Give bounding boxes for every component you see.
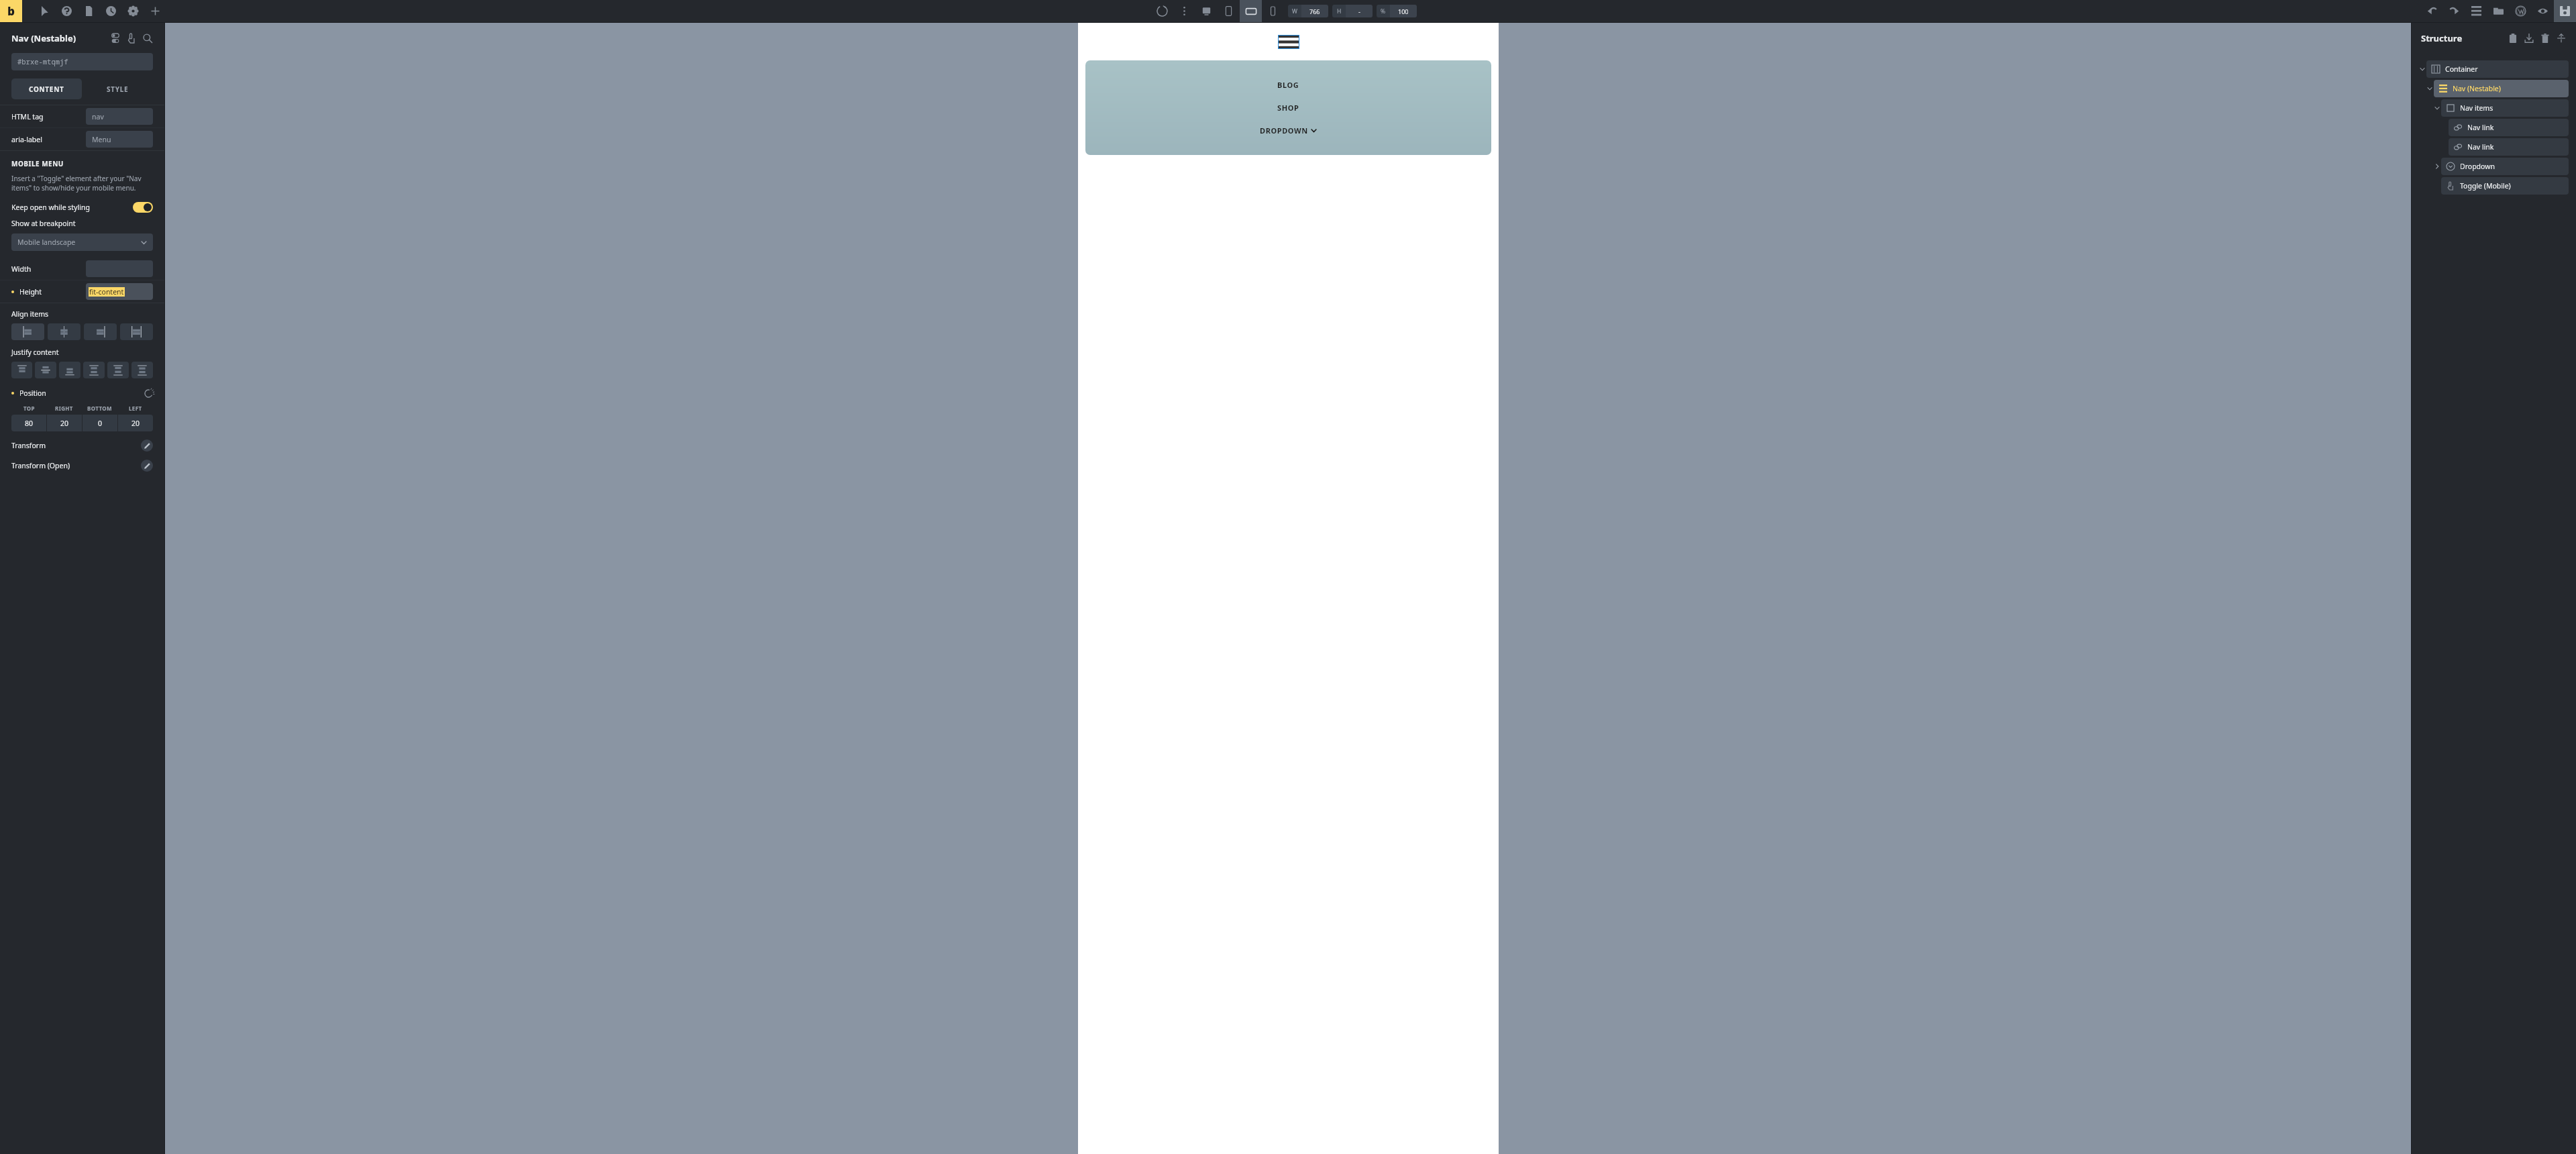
button[interactable]: Transform: [0, 435, 164, 456]
button[interactable]: Justify 5: [131, 362, 153, 378]
button[interactable]: Justify 0: [11, 362, 32, 378]
button[interactable]: Nav (Nestable): [2434, 80, 2569, 97]
button[interactable]: Align 3: [120, 323, 153, 340]
button[interactable]: Settings: [122, 0, 144, 22]
button[interactable]: 20: [118, 415, 153, 431]
button[interactable]: Toggle visibility: [109, 32, 121, 44]
button[interactable]: Align 0: [11, 323, 44, 340]
button[interactable]: Interactions: [125, 32, 137, 44]
staticText: 20: [60, 419, 69, 428]
button[interactable]: Height: [0, 280, 164, 303]
staticText: BOTTOM: [87, 405, 112, 412]
button[interactable]: Landscape: [1240, 0, 1262, 22]
button[interactable]: SHOP: [1277, 103, 1299, 113]
button[interactable]: STYLE: [82, 78, 153, 99]
button[interactable]: Templates: [2487, 0, 2510, 22]
staticText: Transform (Open): [11, 461, 70, 470]
staticText: SHOP: [1277, 103, 1299, 113]
staticText: Menu: [92, 135, 111, 144]
button[interactable]: Delete: [2539, 32, 2551, 44]
button[interactable]: WordPress: [2510, 0, 2532, 22]
button[interactable]: %: [1377, 5, 1417, 17]
button[interactable]: Help: [56, 0, 78, 22]
staticText: BLOG: [1277, 80, 1299, 90]
staticText: 766: [1309, 7, 1320, 15]
button[interactable]: Mobile: [1262, 0, 1284, 22]
button[interactable]: Justify 1: [35, 362, 56, 378]
button[interactable]: Undo: [2421, 0, 2443, 22]
button[interactable]: Bricks home: [0, 0, 22, 22]
button[interactable]: Nav items: [2441, 99, 2569, 117]
button[interactable]: W: [1288, 5, 1328, 17]
staticText: fit-content: [89, 287, 124, 297]
staticText: Show at breakpoint: [11, 219, 76, 228]
staticText: Insert a "Toggle" element after your "Na…: [11, 174, 153, 193]
button[interactable]: History: [100, 0, 122, 22]
button[interactable]: Transform (Open): [0, 456, 164, 476]
button[interactable]: Nav link: [2449, 119, 2569, 136]
button[interactable]: 20: [47, 415, 82, 431]
button[interactable]: Justify 2: [59, 362, 80, 378]
button[interactable]: BLOG: [1277, 80, 1299, 90]
button[interactable]: Reload: [1151, 0, 1173, 22]
staticText: nav: [92, 112, 104, 121]
button[interactable]: Import: [2523, 32, 2534, 44]
staticText: DROPDOWN: [1260, 125, 1308, 136]
staticText: Container: [2445, 64, 2478, 74]
button[interactable]: Menu: [2465, 0, 2487, 22]
button[interactable]: Redo: [2443, 0, 2465, 22]
button[interactable]: Container: [2426, 60, 2569, 78]
button[interactable]: aria-label: [0, 128, 164, 150]
button[interactable]: Align 2: [84, 323, 117, 340]
button[interactable]: Nav link: [2449, 138, 2569, 156]
button[interactable]: Collapse: [2555, 32, 2567, 44]
button[interactable]: Mobile landscape: [11, 233, 153, 251]
button[interactable]: Keep open while styling: [0, 199, 164, 216]
staticText: LEFT: [129, 405, 142, 412]
button[interactable]: Save: [2554, 0, 2576, 22]
staticText: #brxe-mtqmjf: [17, 57, 68, 66]
button[interactable]: HTML tag: [0, 105, 164, 127]
button[interactable]: Search: [142, 32, 153, 44]
button[interactable]: Justify 3: [83, 362, 105, 378]
button[interactable]: Mobile menu toggle: [1278, 35, 1299, 49]
button[interactable]: Width: [0, 258, 164, 280]
staticText: Justify content: [11, 348, 59, 357]
button[interactable]: Desktop: [1195, 0, 1218, 22]
staticText: b: [7, 3, 15, 19]
staticText: Structure: [2421, 32, 2463, 44]
staticText: HTML tag: [11, 112, 44, 121]
staticText: Nav (Nestable): [2453, 84, 2501, 93]
button[interactable]: Dropdown: [2441, 158, 2569, 175]
staticText: STYLE: [107, 85, 129, 94]
button[interactable]: Align 1: [48, 323, 80, 340]
button[interactable]: CONTENT: [11, 78, 82, 99]
staticText: Transform: [11, 441, 46, 450]
staticText: H: [1337, 7, 1342, 15]
button[interactable]: Justify 4: [107, 362, 129, 378]
button[interactable]: More: [1173, 0, 1195, 22]
staticText: Height: [19, 287, 42, 297]
button[interactable]: Pages: [78, 0, 100, 22]
staticText: W: [1292, 7, 1297, 15]
button[interactable]: BLOG: [1085, 60, 1491, 155]
button[interactable]: Reset position: [144, 388, 153, 398]
button[interactable]: 80: [11, 415, 46, 431]
button[interactable]: DROPDOWN: [1260, 125, 1317, 136]
button[interactable]: H: [1332, 5, 1373, 17]
staticText: 0: [98, 419, 103, 428]
staticText: aria-label: [11, 135, 42, 144]
staticText: CONTENT: [29, 85, 64, 94]
button[interactable]: Preview: [2532, 0, 2554, 22]
staticText: Align items: [11, 309, 49, 319]
button[interactable]: Tablet: [1218, 0, 1240, 22]
button[interactable]: Paste: [2507, 32, 2518, 44]
staticText: %: [1381, 7, 1386, 15]
staticText: -: [1358, 7, 1360, 15]
button[interactable]: Toggle (Mobile): [2441, 177, 2569, 195]
staticText: Nav (Nestable): [11, 32, 76, 44]
button[interactable]: Select: [34, 0, 56, 22]
button[interactable]: Add: [144, 0, 166, 22]
button[interactable]: 0: [83, 415, 117, 431]
button[interactable]: #brxe-mtqmjf: [11, 53, 153, 70]
